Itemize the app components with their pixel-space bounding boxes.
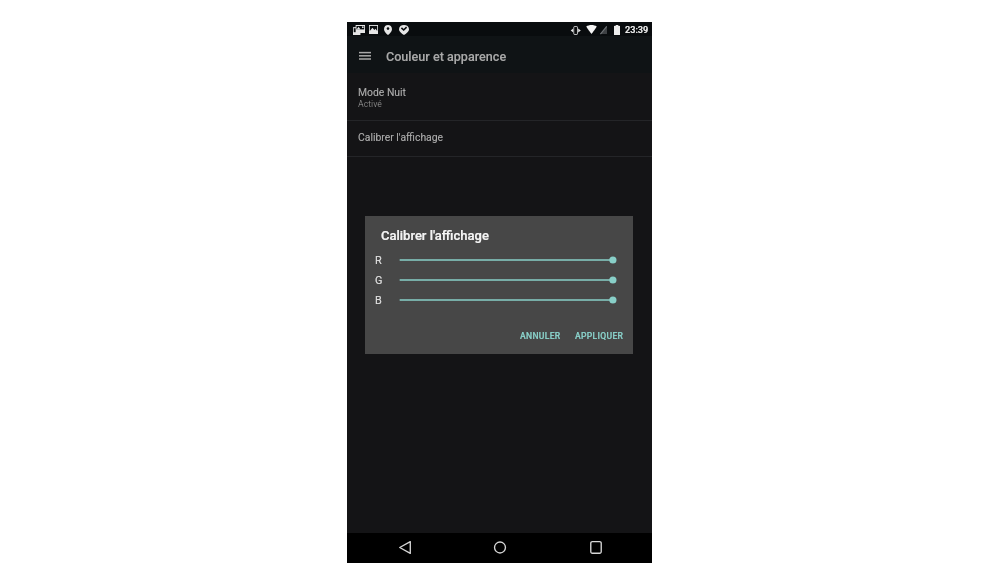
staticText: Mode Nuit [358, 86, 407, 98]
button[interactable]: R channel level [365, 250, 633, 270]
button[interactable]: ANNULER [515, 327, 566, 345]
staticText: APPLIQUER [575, 331, 624, 341]
button[interactable]: Mode Nuit [347, 73, 652, 120]
button[interactable]: Home [484, 532, 516, 562]
staticText: Calibrer l'affichage [358, 131, 444, 143]
button[interactable]: Calibrer l'affichage [347, 121, 652, 155]
button[interactable]: APPLIQUER [570, 327, 629, 345]
staticText: Activé [358, 99, 382, 109]
staticText: ANNULER [520, 331, 561, 341]
button[interactable]: G channel level [365, 270, 633, 290]
staticText: G [375, 274, 383, 287]
staticText: Couleur et apparence [386, 49, 507, 64]
button[interactable]: B channel level [365, 290, 633, 310]
staticText: Calibrer l'affichage [381, 228, 489, 243]
button[interactable]: Open navigation menu [354, 44, 376, 66]
staticText: R [375, 254, 382, 267]
button[interactable]: Recent apps [580, 532, 612, 562]
staticText: B [375, 294, 382, 307]
staticText: 23:39 [625, 24, 649, 35]
button[interactable]: Back [389, 532, 421, 562]
